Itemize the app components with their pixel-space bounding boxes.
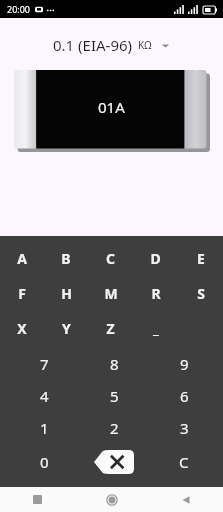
staticText: E xyxy=(197,249,205,268)
staticText: 7 xyxy=(40,354,49,374)
button[interactable]: 8 xyxy=(79,348,149,380)
button[interactable]: _ xyxy=(133,311,178,346)
button[interactable]: E xyxy=(178,241,223,276)
button[interactable]: C xyxy=(88,241,133,276)
button[interactable]: 2 xyxy=(79,412,149,444)
button[interactable]: 7 xyxy=(10,348,79,380)
button[interactable]: H xyxy=(44,276,88,311)
button[interactable]: 1 xyxy=(10,412,79,444)
staticText: B xyxy=(61,249,71,268)
staticText: KΩ xyxy=(138,38,152,52)
staticText: 0.1 (EIA-96) xyxy=(53,35,133,55)
staticText: R xyxy=(151,284,161,303)
staticText: 2 xyxy=(110,418,119,438)
button[interactable]: D xyxy=(133,241,178,276)
staticText: 20:00 xyxy=(7,3,31,15)
button[interactable]: Y xyxy=(44,311,88,346)
button[interactable]: Z xyxy=(88,311,133,346)
staticText: Y xyxy=(62,319,71,338)
button[interactable]: B xyxy=(44,241,88,276)
button[interactable]: Backspace xyxy=(79,444,149,480)
staticText: S xyxy=(197,284,205,303)
staticText: H xyxy=(61,284,72,303)
button[interactable]: S xyxy=(178,276,223,311)
button[interactable]: 9 xyxy=(149,348,219,380)
staticText: M xyxy=(104,284,118,303)
button[interactable]: Recent apps xyxy=(0,487,75,512)
staticText: 6 xyxy=(180,386,189,406)
button[interactable]: X xyxy=(0,311,44,346)
button[interactable]: A xyxy=(0,241,44,276)
staticText: _ xyxy=(153,319,159,338)
staticText: 5 xyxy=(110,386,119,406)
staticText: 3 xyxy=(180,418,189,438)
other: Select unit xyxy=(161,41,170,50)
staticText: 1 xyxy=(40,418,49,438)
staticText: C xyxy=(179,452,189,472)
button[interactable]: M xyxy=(88,276,133,311)
staticText: X xyxy=(17,319,27,338)
staticText: C xyxy=(106,249,115,268)
button[interactable]: 3 xyxy=(149,412,219,444)
button[interactable]: 0 xyxy=(10,444,79,480)
staticText: D xyxy=(150,249,161,268)
button[interactable]: R xyxy=(133,276,178,311)
staticText: A xyxy=(17,249,27,268)
staticText: Z xyxy=(106,319,115,338)
button[interactable]: 5 xyxy=(79,380,149,412)
staticText: 0 xyxy=(40,452,49,472)
staticText: 4 xyxy=(40,386,49,406)
button[interactable]: C xyxy=(149,444,219,480)
button[interactable] xyxy=(14,70,210,152)
button[interactable]: 0.1 (EIA-96) xyxy=(0,32,223,58)
staticText: F xyxy=(18,284,26,303)
staticText: 9 xyxy=(180,354,189,374)
button[interactable]: 4 xyxy=(10,380,79,412)
button[interactable]: 6 xyxy=(149,380,219,412)
staticText: 01A xyxy=(98,97,125,117)
button[interactable]: Home xyxy=(75,487,149,512)
staticText: 8 xyxy=(110,354,119,374)
button[interactable]: F xyxy=(0,276,44,311)
button[interactable]: Back xyxy=(149,487,223,512)
